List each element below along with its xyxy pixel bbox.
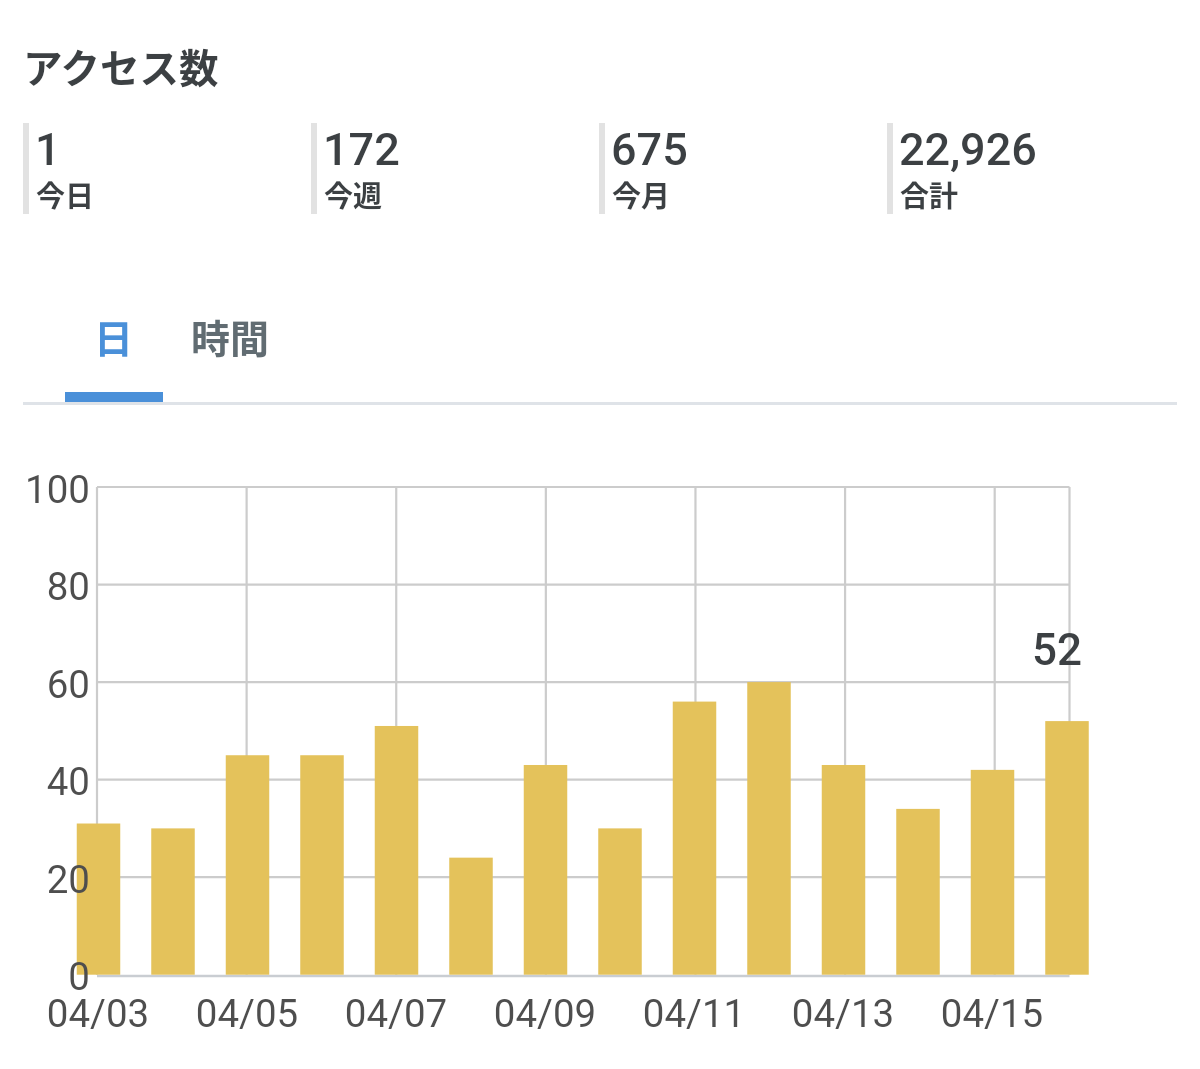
staticText: 22,926 (899, 123, 1037, 176)
staticText: 04/13 (753, 991, 933, 1036)
staticText: 今日 (36, 173, 95, 215)
staticText: 日 (94, 308, 134, 364)
button[interactable]: 172 (311, 123, 591, 214)
staticText: 今月 (612, 173, 671, 215)
staticText: 100 (1, 467, 90, 512)
staticText: 1 (35, 123, 61, 176)
staticText: 合計 (900, 173, 959, 215)
staticText: 80 (1, 564, 90, 609)
staticText: アクセス数 (23, 37, 219, 94)
staticText: 04/07 (306, 991, 486, 1036)
staticText: 52 (975, 624, 1082, 676)
staticText: 60 (1, 662, 90, 707)
staticText: 時間 (191, 308, 270, 364)
button[interactable]: 日 tab, selected (65, 288, 163, 384)
staticText: 04/03 (8, 991, 188, 1036)
staticText: 20 (1, 857, 90, 902)
staticText: 04/09 (455, 991, 635, 1036)
staticText: 40 (1, 759, 90, 804)
button[interactable]: 22,926 (887, 123, 1167, 214)
staticText: 04/05 (157, 991, 337, 1036)
staticText: 0 (1, 954, 90, 999)
staticText: 04/11 (604, 991, 784, 1036)
staticText: 675 (611, 123, 688, 176)
button[interactable]: 675 (599, 123, 879, 214)
staticText: 04/15 (902, 991, 1082, 1036)
staticText: 今週 (324, 173, 383, 215)
button[interactable]: 1 (23, 123, 303, 214)
staticText: 172 (323, 123, 400, 176)
button[interactable]: 時間 tab (170, 288, 290, 384)
